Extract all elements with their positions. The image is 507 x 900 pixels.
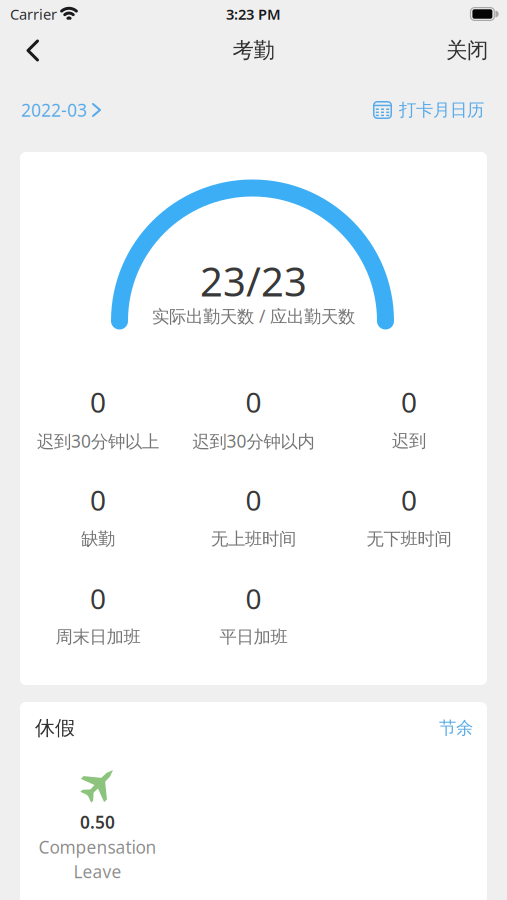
- staticText: 0: [90, 481, 106, 519]
- staticText: 3:23 PM: [226, 4, 281, 24]
- staticText: 0: [90, 383, 106, 421]
- staticText: 0: [245, 580, 261, 617]
- staticText: 23/23: [200, 254, 307, 307]
- staticText: 迟到30分钟以上: [37, 429, 159, 452]
- staticText: 考勤: [232, 37, 274, 64]
- button[interactable]: 0.50: [27, 767, 167, 883]
- staticText: 平日加班: [219, 626, 287, 648]
- staticText: 周末日加班: [55, 626, 140, 648]
- staticText: 0: [245, 383, 261, 421]
- button[interactable]: Back: [28, 33, 49, 68]
- staticText: 0.50: [80, 810, 115, 833]
- staticText: 0: [245, 481, 261, 519]
- staticText: 打卡月日历: [399, 99, 484, 121]
- staticText: 休假: [35, 716, 75, 740]
- staticText: Carrier: [10, 4, 57, 24]
- button[interactable]: 关闭: [446, 37, 488, 64]
- staticText: Leave: [73, 860, 121, 883]
- staticText: 0: [401, 383, 417, 421]
- staticText: 2022-03: [21, 98, 87, 121]
- staticText: 无上班时间: [211, 528, 296, 550]
- staticText: Compensation: [38, 835, 156, 858]
- staticText: 节余: [439, 717, 473, 739]
- staticText: 无下班时间: [367, 528, 452, 550]
- staticText: 0: [90, 580, 106, 617]
- button[interactable]: 2022-03: [21, 98, 100, 121]
- button[interactable]: 打卡月日历: [373, 99, 484, 121]
- staticText: 迟到30分钟以内: [192, 429, 314, 452]
- staticText: 关闭: [446, 37, 488, 64]
- staticText: 缺勤: [81, 528, 115, 550]
- staticText: 实际出勤天数 / 应出勤天数: [152, 304, 355, 327]
- staticText: 0: [401, 481, 417, 519]
- button[interactable]: 节余: [439, 717, 473, 739]
- staticText: 迟到: [392, 430, 426, 452]
